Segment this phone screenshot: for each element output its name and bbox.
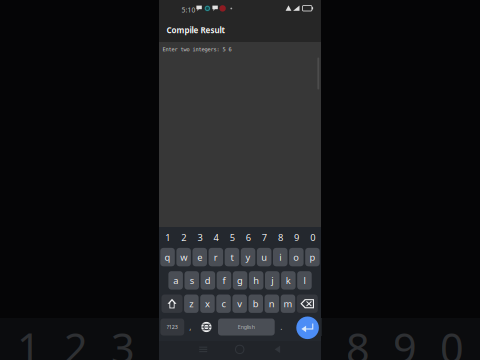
staticText: p <box>309 251 315 263</box>
staticText: l <box>303 274 305 287</box>
button[interactable]: t <box>225 248 239 266</box>
button[interactable]: y <box>241 248 255 266</box>
staticText: 1 <box>165 231 170 244</box>
button[interactable]: i <box>273 248 287 266</box>
button[interactable]: 1 <box>160 231 176 244</box>
staticText: r <box>214 251 218 263</box>
button[interactable]: 8 <box>272 231 288 244</box>
staticText: Compile Result <box>166 25 224 35</box>
button[interactable]: Backspace <box>297 294 318 313</box>
staticText: c <box>222 297 226 310</box>
button[interactable]: n <box>265 294 279 313</box>
staticText: z <box>189 297 193 310</box>
button[interactable]: 5 <box>224 231 240 244</box>
staticText: 2 <box>64 320 88 360</box>
staticText: , <box>189 322 191 332</box>
button[interactable]: Back <box>273 345 282 354</box>
staticText: 8 <box>278 231 283 244</box>
staticText: n <box>269 297 275 310</box>
button[interactable]: j <box>265 271 279 290</box>
button[interactable]: l <box>297 271 312 290</box>
staticText: 5:10 <box>182 5 196 14</box>
staticText: x <box>205 297 210 310</box>
button[interactable]: q <box>160 248 175 266</box>
staticText: b <box>253 297 259 310</box>
button[interactable]: v <box>232 294 247 313</box>
staticText: 8 <box>346 320 370 360</box>
staticText: 3 <box>111 320 135 360</box>
staticText: f <box>222 274 225 287</box>
staticText: English <box>238 323 255 331</box>
staticText: 4 <box>214 231 219 244</box>
button[interactable]: a <box>168 271 183 290</box>
staticText: Enter two integers: 5 6 <box>163 46 232 53</box>
button[interactable]: b <box>248 294 263 313</box>
button[interactable]: p <box>305 248 320 266</box>
button[interactable]: Shift <box>161 294 182 313</box>
button[interactable]: 7 <box>256 231 272 244</box>
button[interactable]: x <box>200 294 215 313</box>
button[interactable]: k <box>281 271 296 290</box>
button[interactable]: s <box>184 271 199 290</box>
staticText: s <box>190 274 194 287</box>
button[interactable]: o <box>289 248 304 266</box>
staticText: t <box>230 251 233 263</box>
button[interactable]: Enter <box>296 316 319 339</box>
staticText: o <box>293 251 299 263</box>
staticText: v <box>237 297 242 310</box>
button[interactable]: 3 <box>192 231 208 244</box>
staticText: 9 <box>393 320 417 360</box>
staticText: 9 <box>294 231 299 244</box>
staticText: . <box>280 322 282 332</box>
staticText: u <box>261 251 267 263</box>
button[interactable]: Recents <box>199 345 207 354</box>
staticText: 3 <box>197 231 202 244</box>
button[interactable]: f <box>217 271 231 290</box>
button[interactable]: m <box>281 294 295 313</box>
button[interactable]: Home <box>235 345 244 354</box>
button[interactable]: c <box>216 294 231 313</box>
staticText: 0 <box>310 231 315 244</box>
staticText: ?123 <box>167 323 178 331</box>
staticText: i <box>279 251 281 263</box>
staticText: h <box>253 274 259 287</box>
staticText: a <box>173 274 178 287</box>
button[interactable]: z <box>184 294 199 313</box>
button[interactable]: 6 <box>240 231 256 244</box>
staticText: k <box>286 274 291 287</box>
staticText: y <box>246 251 251 263</box>
staticText: q <box>165 251 171 263</box>
staticText: 7 <box>262 231 267 244</box>
button[interactable]: w <box>176 248 191 266</box>
button[interactable]: 4 <box>208 231 224 244</box>
button[interactable]: ?123 <box>160 318 184 335</box>
button[interactable]: d <box>201 271 215 290</box>
staticText: 5 <box>230 231 235 244</box>
button[interactable]: g <box>233 271 247 290</box>
staticText: e <box>197 251 202 263</box>
button[interactable]: h <box>249 271 263 290</box>
staticText: 2 <box>181 231 186 244</box>
button[interactable]: e <box>192 248 207 266</box>
button[interactable]: , <box>185 318 196 335</box>
staticText: 6 <box>246 231 251 244</box>
staticText: m <box>283 297 292 310</box>
button[interactable]: 0 <box>305 231 321 244</box>
button[interactable]: r <box>209 248 223 266</box>
button[interactable]: 2 <box>176 231 192 244</box>
staticText: 1 <box>17 320 41 360</box>
staticText: g <box>237 274 243 287</box>
button[interactable]: English <box>218 318 275 335</box>
button[interactable]: Switch language <box>201 321 212 332</box>
staticText: 0 <box>440 320 464 360</box>
staticText: d <box>205 274 211 287</box>
staticText: j <box>271 274 273 287</box>
button[interactable]: . <box>276 318 287 335</box>
button[interactable]: u <box>257 248 271 266</box>
button[interactable]: 9 <box>288 231 305 244</box>
staticText: w <box>180 251 187 263</box>
